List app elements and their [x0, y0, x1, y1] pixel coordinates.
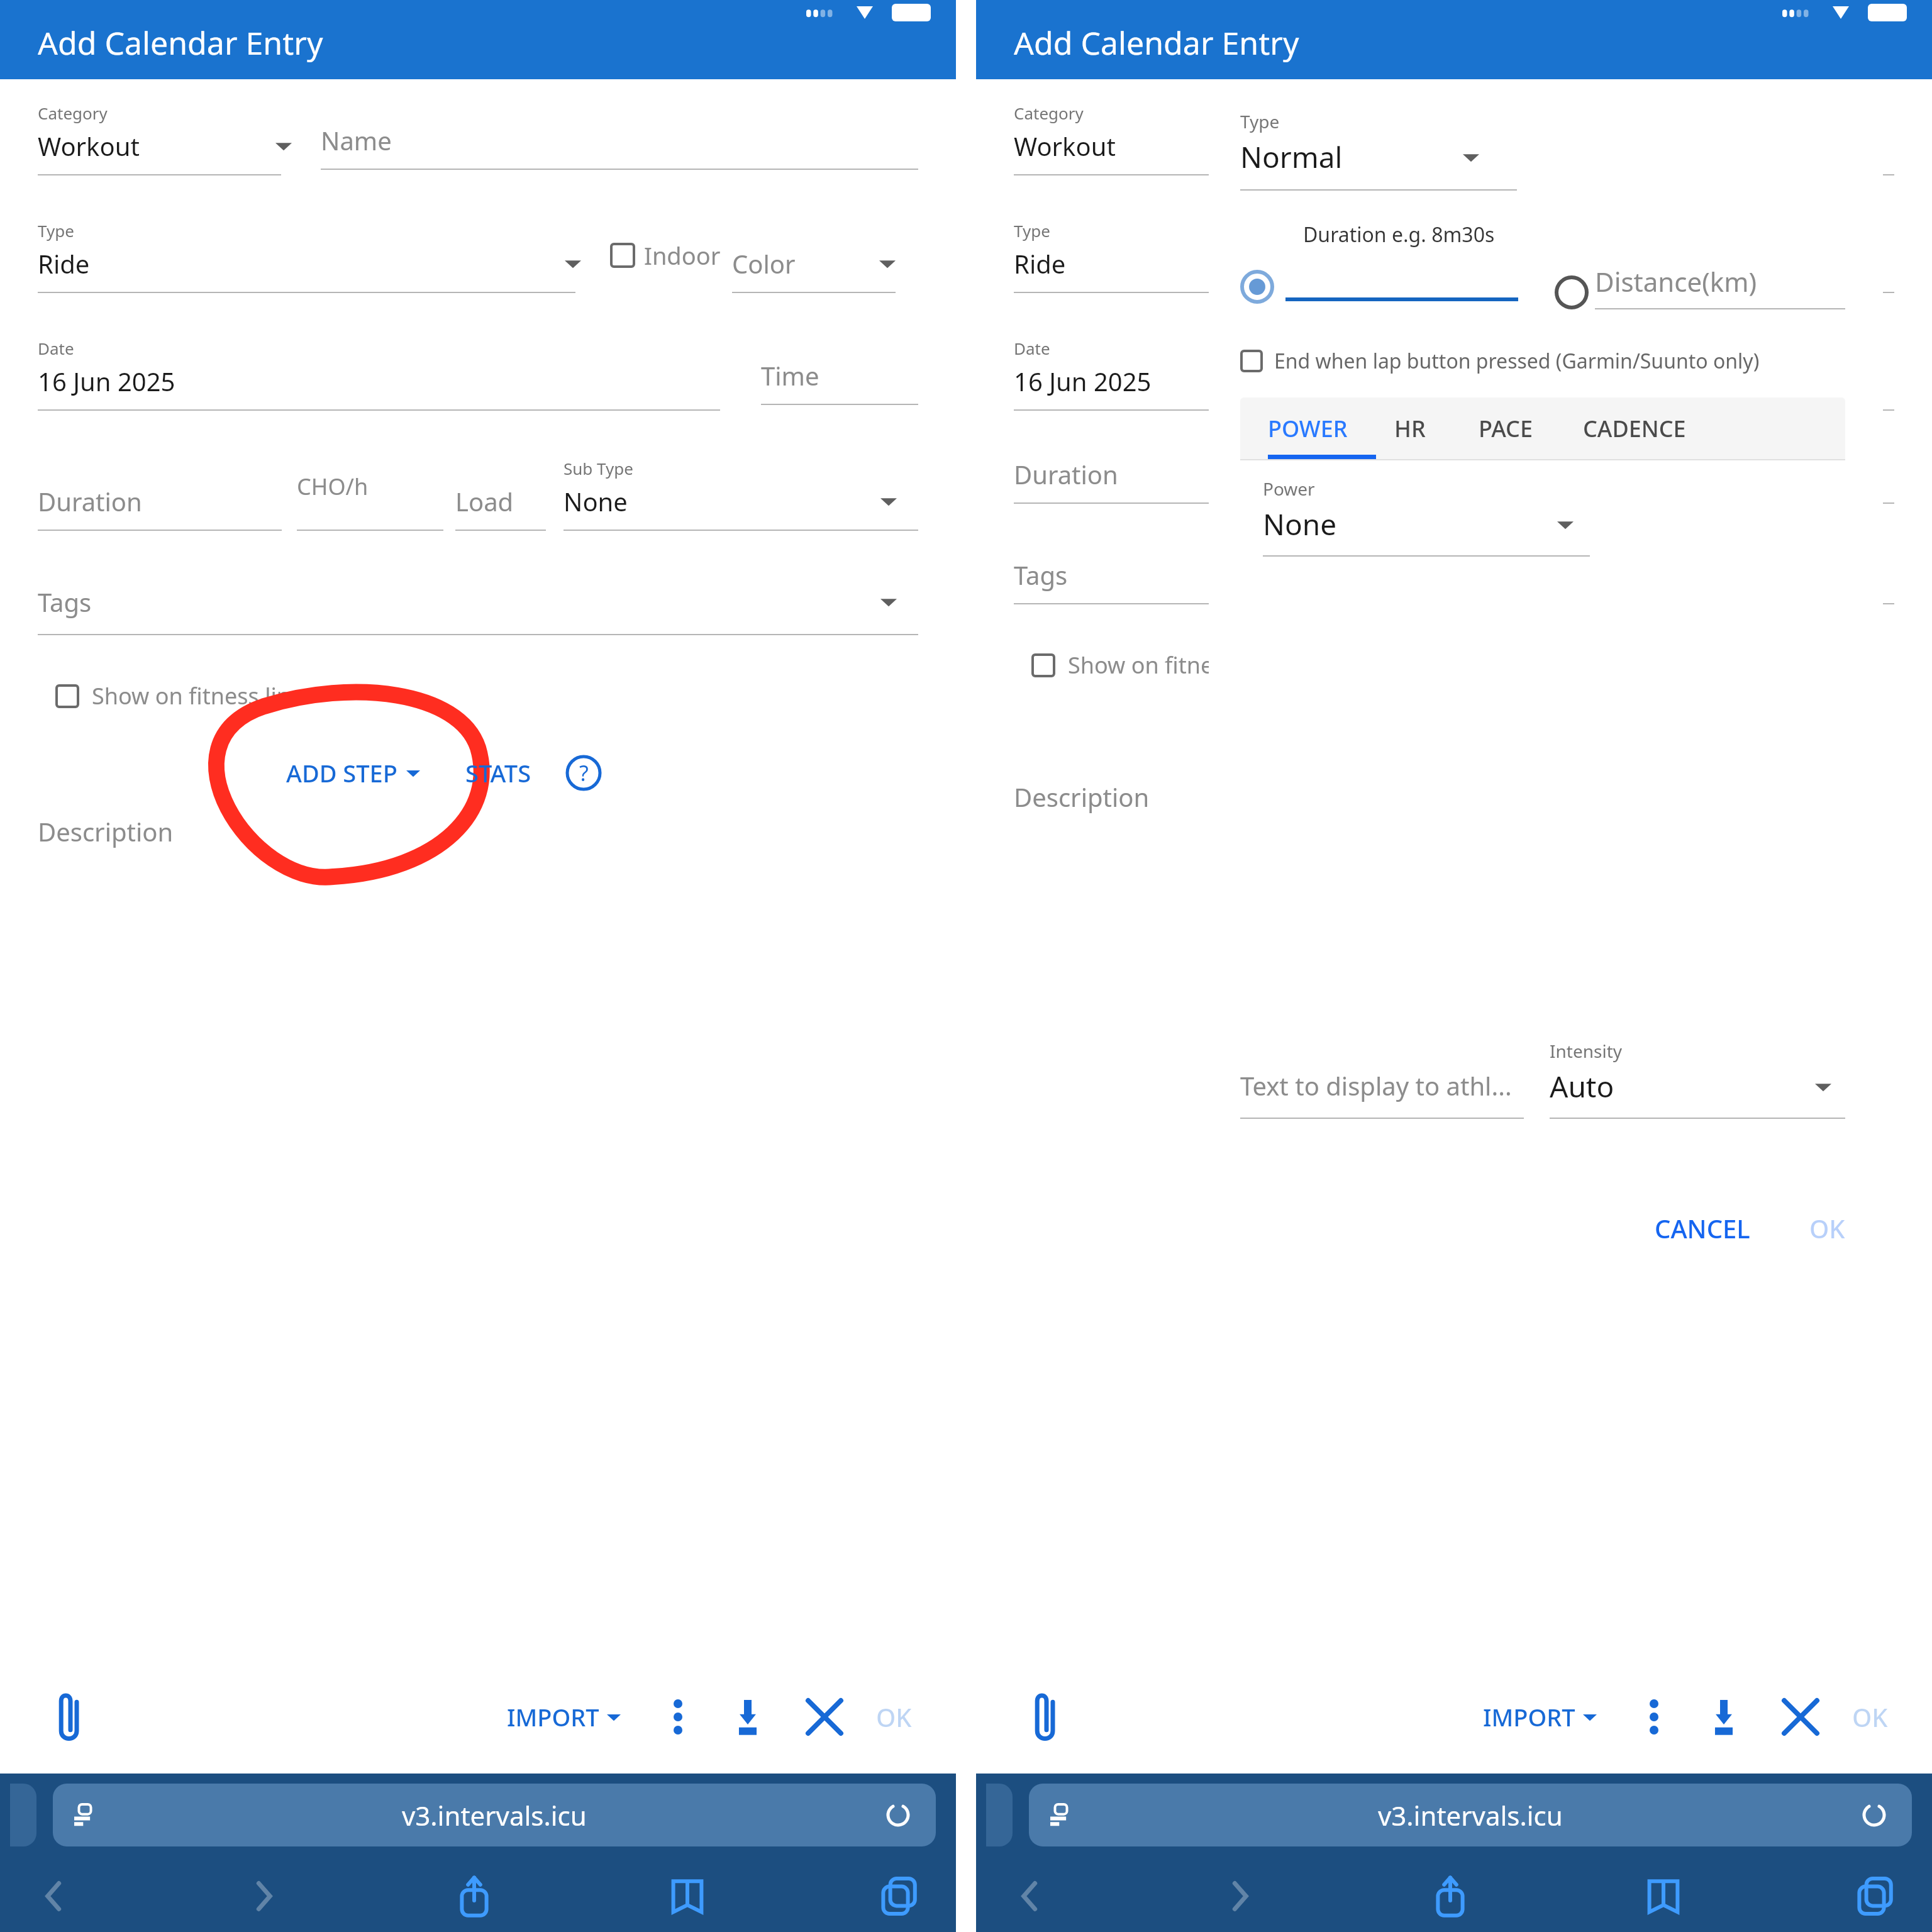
staticText: Auto: [1550, 1067, 1614, 1106]
staticText: 16 Jun 2025: [1014, 364, 1152, 398]
button[interactable]: STATS: [465, 757, 531, 789]
button[interactable]: ADD STEP: [286, 757, 420, 789]
staticText: Add Calendar Entry: [38, 21, 323, 64]
staticText: Duration: [38, 484, 142, 518]
staticText: Name: [321, 123, 392, 157]
staticText: Workout: [38, 129, 140, 163]
button[interactable]: Tabs: [1854, 1874, 1898, 1918]
button[interactable]: More options: [1632, 1695, 1676, 1739]
button[interactable]: v3.intervals.icu: [53, 1784, 936, 1846]
staticText: End when lap button pressed (Garmin/Suun…: [1274, 347, 1760, 375]
button[interactable]: Tabs: [878, 1874, 922, 1918]
staticText: 16 Jun 2025: [38, 364, 175, 398]
staticText: None: [563, 484, 628, 518]
staticText: Description: [1014, 780, 1150, 814]
staticText: ADD STEP: [286, 757, 397, 789]
staticText: Indoor: [644, 239, 721, 272]
button[interactable]: v3.intervals.icu: [1029, 1784, 1912, 1846]
button[interactable]: Back: [34, 1876, 74, 1916]
staticText: Description: [38, 814, 174, 848]
button[interactable]: Download: [1699, 1692, 1749, 1742]
staticText: Category: [38, 102, 108, 124]
staticText: Add Calendar Entry: [1014, 21, 1299, 64]
button[interactable]: [1240, 270, 1518, 304]
staticText: v3.intervals.icu: [402, 1797, 587, 1833]
button[interactable]: More options: [656, 1695, 700, 1739]
button[interactable]: OK: [876, 1700, 912, 1734]
staticText: CHO/h: [297, 471, 369, 502]
button[interactable]: HR: [1394, 413, 1426, 444]
button[interactable]: OK: [1809, 1211, 1845, 1245]
staticText: Show on fitness line: [92, 680, 304, 711]
staticText: Type: [1014, 219, 1050, 241]
staticText: Time: [761, 358, 819, 392]
staticText: Category: [1014, 102, 1084, 124]
button[interactable]: Download: [723, 1692, 773, 1742]
staticText: Power: [1263, 477, 1315, 501]
staticText: ?: [579, 758, 589, 787]
button[interactable]: CANCEL: [1655, 1211, 1750, 1245]
staticText: CADENCE: [1583, 413, 1686, 444]
button[interactable]: Back: [1010, 1876, 1050, 1916]
staticText: PACE: [1479, 413, 1533, 444]
button[interactable]: IMPORT: [507, 1701, 621, 1733]
button[interactable]: PACE: [1479, 413, 1533, 444]
staticText: Duration e.g. 8m30s: [1303, 221, 1495, 248]
staticText: Normal: [1240, 137, 1343, 177]
button[interactable]: End when lap button pressed (Garmin/Suun…: [1240, 347, 1760, 375]
staticText: None: [1263, 504, 1337, 544]
button[interactable]: Close: [1775, 1692, 1826, 1742]
button[interactable]: Share: [1428, 1874, 1472, 1918]
staticText: Duration: [1014, 457, 1118, 491]
staticText: Distance(km): [1595, 264, 1757, 299]
button[interactable]: OK: [1852, 1700, 1888, 1734]
button[interactable]: Attach: [1020, 1692, 1070, 1742]
staticText: Date: [1014, 337, 1050, 359]
staticText: Ride: [38, 247, 90, 280]
staticText: Load: [455, 484, 514, 518]
button[interactable]: Bookmarks: [665, 1874, 709, 1918]
staticText: Intensity: [1550, 1039, 1623, 1063]
staticText: Workout: [1014, 129, 1116, 163]
staticText: Ride: [1014, 247, 1066, 280]
staticText: Tags: [1014, 558, 1068, 592]
button[interactable]: Forward: [243, 1876, 284, 1916]
button[interactable]: Bookmarks: [1641, 1874, 1685, 1918]
button[interactable]: Show on fitness line: [55, 680, 304, 711]
staticText: Tags: [38, 585, 92, 619]
staticText: Type: [38, 219, 74, 241]
button[interactable]: IMPORT: [1483, 1701, 1597, 1733]
button[interactable]: Indoor: [610, 239, 721, 272]
button[interactable]: POWER: [1268, 413, 1348, 444]
button[interactable]: Close: [799, 1692, 850, 1742]
button[interactable]: Attach: [44, 1692, 94, 1742]
staticText: Type: [1240, 109, 1280, 133]
staticText: Show on fitnes: [1068, 650, 1224, 680]
staticText: Text to display to athl...: [1240, 1069, 1512, 1102]
button[interactable]: CADENCE: [1583, 413, 1686, 444]
button[interactable]: Distance(km): [1555, 264, 1845, 309]
staticText: Date: [38, 337, 74, 359]
staticText: v3.intervals.icu: [1378, 1797, 1563, 1833]
staticText: IMPORT: [507, 1701, 599, 1733]
button[interactable]: Help: [565, 755, 602, 791]
button[interactable]: Forward: [1219, 1876, 1260, 1916]
staticText: IMPORT: [1483, 1701, 1575, 1733]
staticText: Sub Type: [563, 457, 633, 479]
staticText: POWER: [1268, 413, 1348, 444]
button[interactable]: Share: [452, 1874, 496, 1918]
staticText: HR: [1394, 413, 1426, 444]
staticText: Color: [732, 247, 796, 280]
